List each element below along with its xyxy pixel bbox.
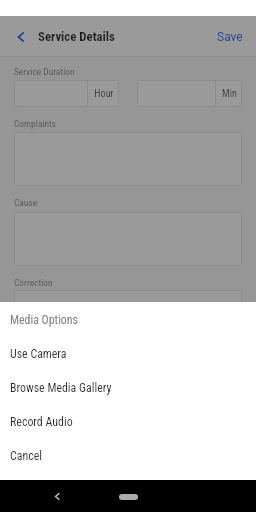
staticText: Browse Media Gallery (10, 381, 112, 395)
button[interactable]: Cancel (0, 439, 256, 473)
staticText: Service Details (38, 29, 115, 44)
button[interactable]: Back (49, 489, 63, 503)
button[interactable] (14, 132, 242, 186)
button[interactable]: Min (137, 80, 242, 107)
staticText: Use Camera (10, 347, 67, 361)
button[interactable]: Save (203, 22, 256, 52)
staticText: Service Duration (14, 66, 75, 77)
button[interactable] (14, 212, 242, 266)
button[interactable]: Media Options (0, 303, 256, 337)
staticText: Media Options (10, 313, 79, 327)
button[interactable]: Browse Media Gallery (0, 371, 256, 405)
staticText: Cancel (10, 449, 42, 463)
button[interactable]: Hour (14, 80, 119, 107)
staticText: Complaints (14, 118, 57, 129)
button[interactable] (14, 290, 242, 344)
staticText: Hour (94, 88, 114, 100)
button[interactable]: Use Camera (0, 337, 256, 371)
button[interactable]: Back (11, 28, 29, 46)
staticText: Record Audio (10, 415, 73, 429)
staticText: Save (217, 30, 243, 44)
button[interactable]: Record Audio (0, 405, 256, 439)
staticText: Min (222, 88, 237, 100)
staticText: Correction (14, 277, 53, 288)
staticText: Cause (14, 197, 38, 208)
